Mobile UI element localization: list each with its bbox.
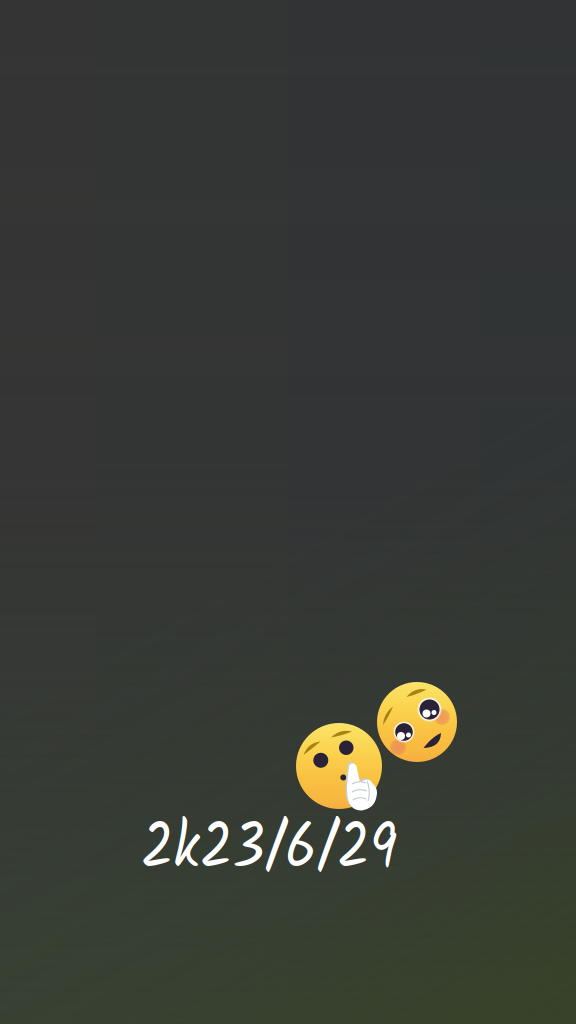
button[interactable]: 2k23/6/29: [141, 799, 432, 901]
button[interactable]: Pleading face sticker: [374, 679, 460, 765]
staticText: 2k23/6/29: [141, 799, 432, 901]
button[interactable]: Shushing face sticker: [294, 719, 386, 815]
